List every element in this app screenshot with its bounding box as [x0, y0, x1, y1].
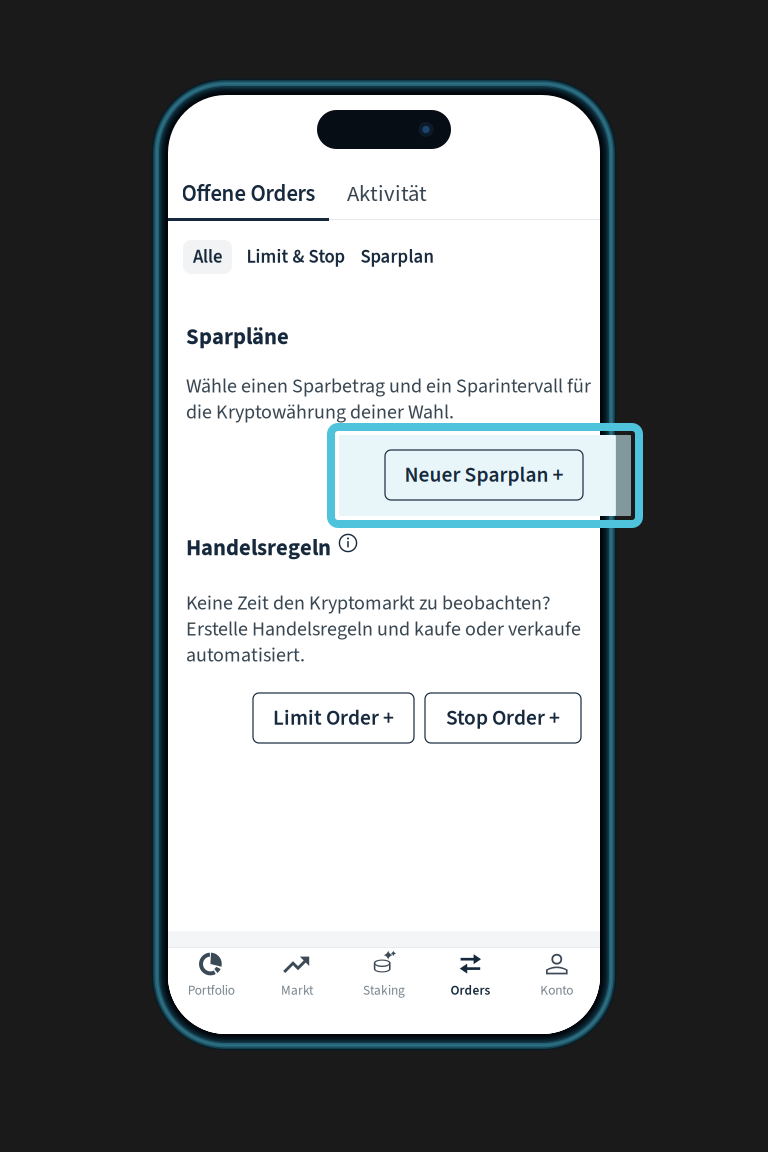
staticText: Limit & Stop [246, 244, 345, 270]
button[interactable]: Markt [254, 948, 341, 1034]
button[interactable]: Orders [427, 948, 514, 1034]
staticText: Aktivität [347, 178, 427, 210]
staticText: Offene Orders [181, 178, 315, 210]
staticText: Neuer Sparplan + [404, 460, 563, 490]
button[interactable]: Alle [183, 240, 232, 274]
staticText: Portfolio [188, 981, 235, 1000]
button[interactable]: Stop Order + [425, 693, 581, 743]
staticText: Limit Order + [273, 703, 394, 733]
staticText: Erstelle Handelsregeln und kaufe oder ve… [186, 615, 581, 643]
staticText: Orders [450, 981, 490, 1000]
staticText: Handelsregeln [186, 532, 331, 564]
staticText: die Kryptowährung deiner Wahl. [186, 398, 454, 426]
staticText: Markt [281, 981, 314, 1000]
staticText: Stop Order + [446, 703, 560, 733]
staticText: automatisiert. [186, 641, 305, 669]
button[interactable]: Limit & Stop [244, 240, 348, 274]
button[interactable]: Offene Orders [168, 169, 329, 219]
button[interactable]: Staking [341, 948, 427, 1034]
button[interactable]: Neuer Sparplan + [385, 450, 583, 500]
staticText: Sparplan [360, 244, 433, 270]
button[interactable]: Aktivität [329, 169, 445, 219]
staticText: Staking [363, 981, 405, 1000]
staticText: Wähle einen Sparbetrag und ein Sparinter… [186, 372, 591, 400]
button[interactable]: Konto [514, 948, 600, 1034]
button[interactable]: Sparplan [356, 240, 438, 274]
staticText: Keine Zeit den Kryptomarkt zu beobachten… [186, 589, 551, 617]
staticText: Sparpläne [186, 321, 289, 353]
staticText: Alle [193, 244, 222, 270]
button[interactable]: Portfolio [168, 948, 254, 1034]
button[interactable]: Limit Order + [253, 693, 414, 743]
staticText: Konto [540, 981, 573, 1000]
